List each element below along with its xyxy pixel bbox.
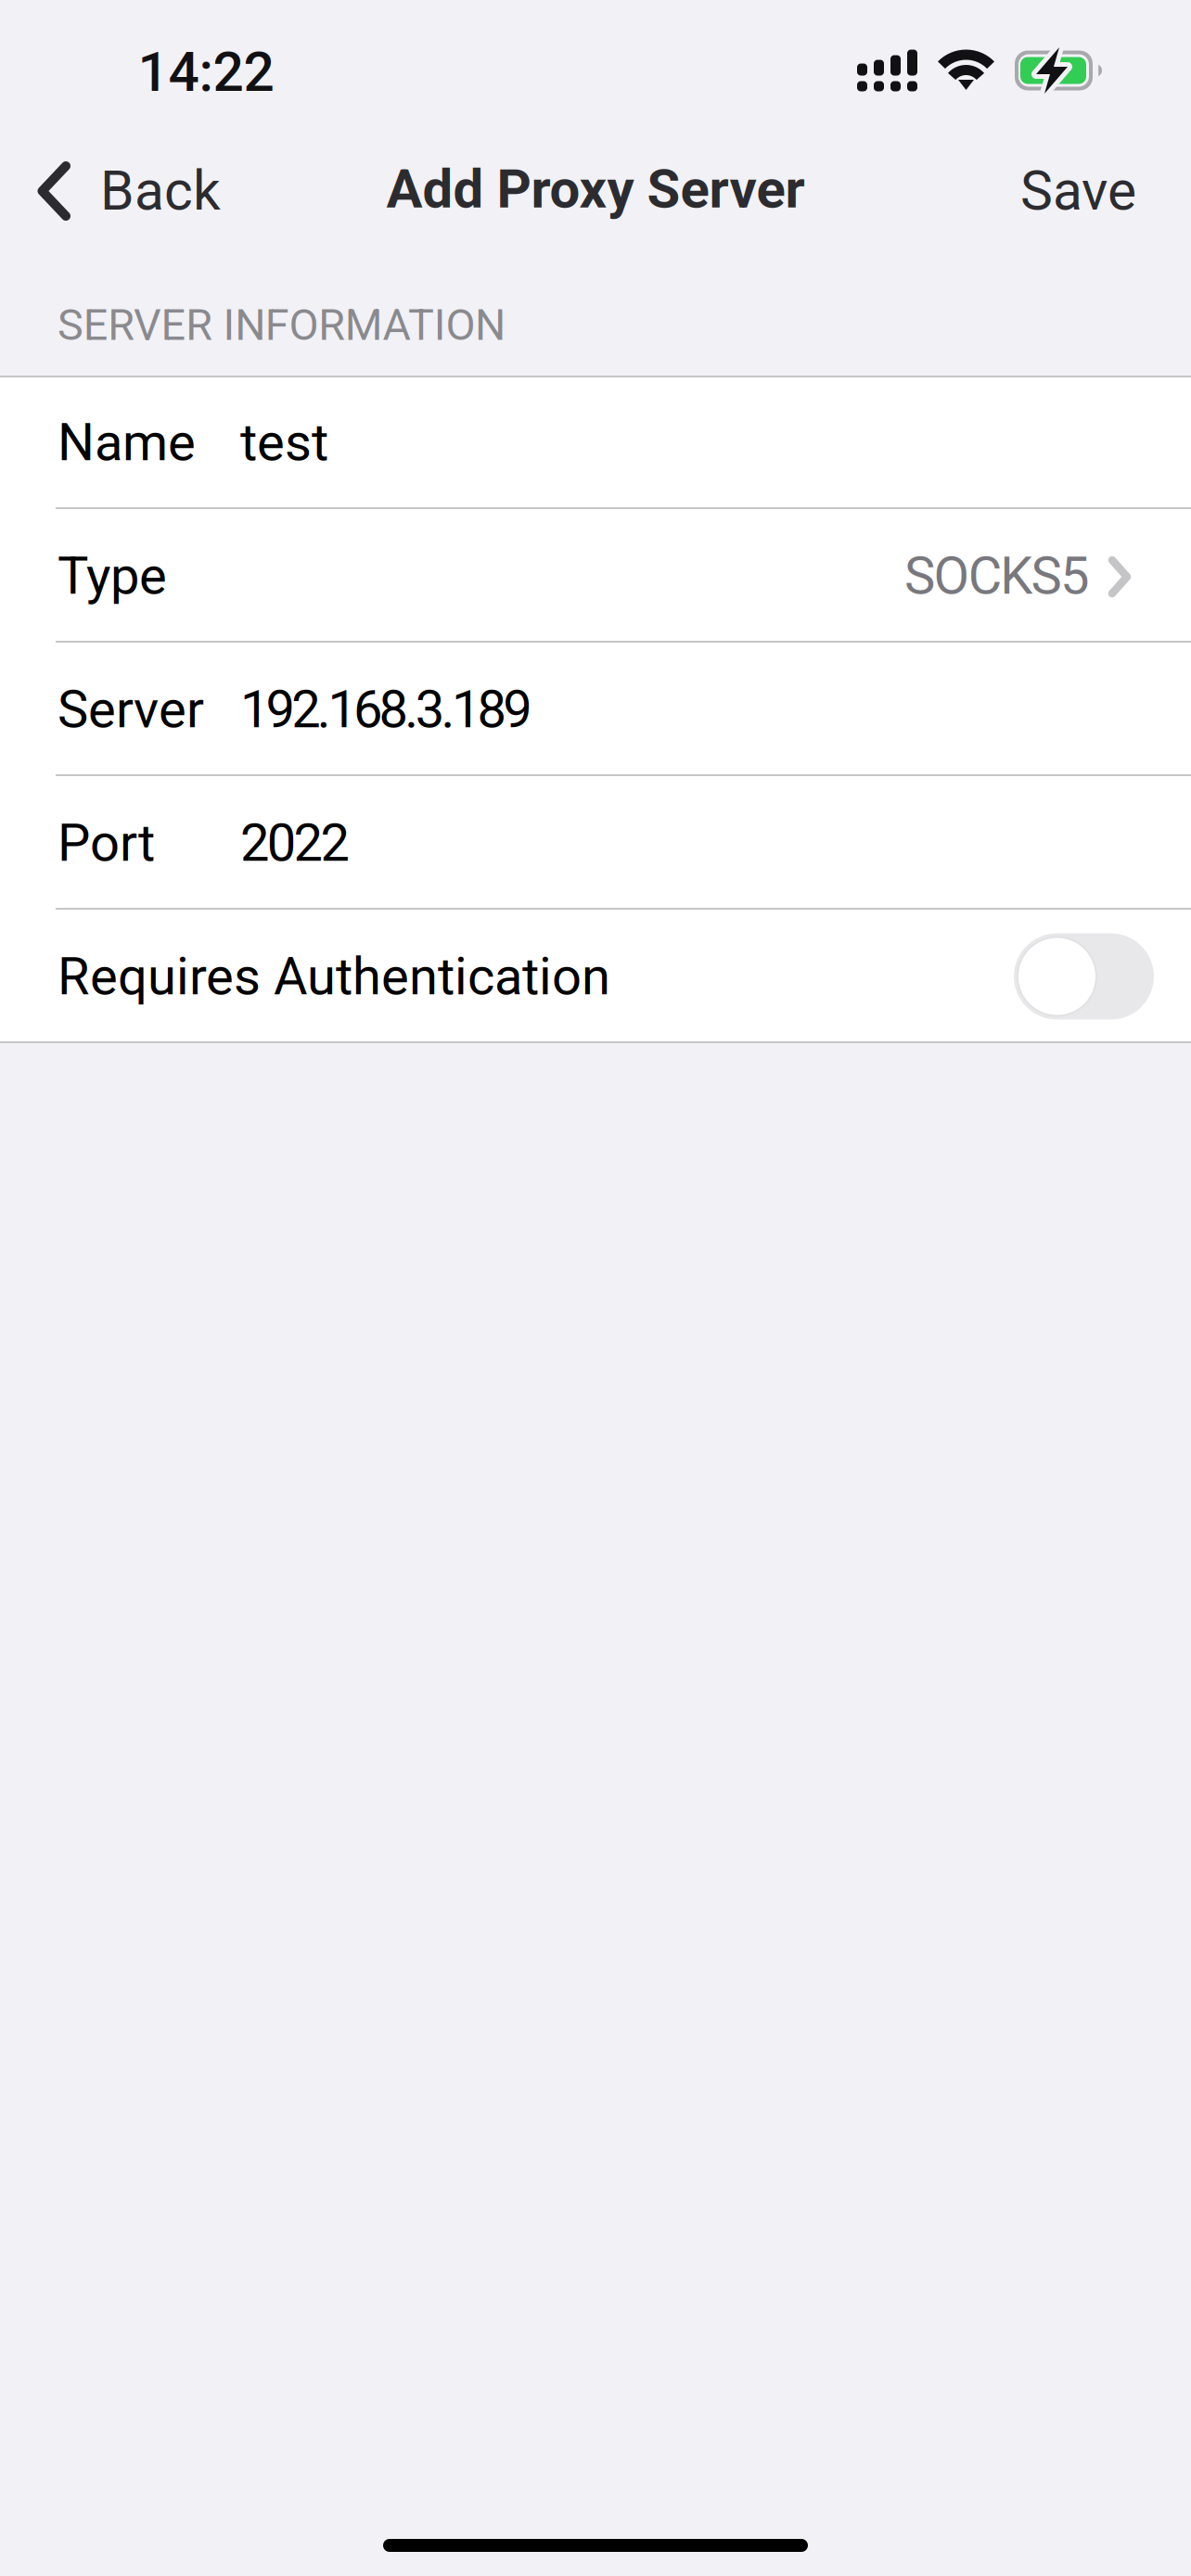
staticText: Server	[58, 679, 204, 740]
staticText: Back	[100, 159, 221, 223]
staticText: 14:22	[138, 40, 274, 104]
staticText: SOCKS5	[904, 545, 1089, 606]
staticText: Type	[58, 545, 167, 606]
staticText: Add Proxy Server	[386, 158, 805, 221]
staticText: 192.168.3.189	[240, 679, 532, 740]
staticText: test	[240, 412, 328, 473]
staticText: SERVER INFORMATION	[58, 300, 506, 351]
button[interactable]: Name	[0, 376, 1191, 509]
staticText: 2022	[240, 812, 349, 873]
staticText: Name	[58, 412, 196, 473]
button[interactable]: Back	[0, 139, 249, 243]
button[interactable]: Type	[0, 509, 1191, 643]
staticText: Save	[1020, 159, 1136, 223]
button[interactable]: Server	[0, 643, 1191, 776]
button[interactable]: Requires Authentication	[0, 910, 1191, 1043]
button[interactable]: Port	[0, 776, 1191, 910]
button[interactable]: Save	[983, 139, 1191, 243]
staticText: Requires Authentication	[58, 946, 610, 1007]
staticText: Port	[58, 812, 155, 873]
